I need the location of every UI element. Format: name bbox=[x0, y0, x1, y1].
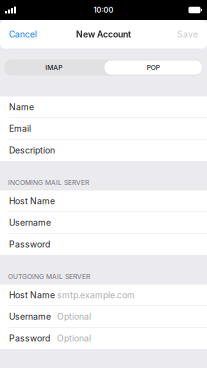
staticText: Host Name bbox=[9, 196, 55, 206]
button[interactable]: POP bbox=[103, 59, 203, 75]
staticText: Username bbox=[9, 311, 51, 322]
button[interactable]: Name bbox=[0, 96, 207, 117]
button[interactable]: Username bbox=[0, 212, 207, 233]
staticText: Password bbox=[9, 239, 50, 249]
button[interactable]: Password bbox=[0, 233, 207, 255]
staticText: IMAP bbox=[45, 63, 62, 72]
button[interactable]: Password bbox=[0, 327, 207, 349]
staticText: New Account bbox=[76, 29, 131, 39]
staticText: INCOMING MAIL SERVER bbox=[8, 178, 89, 186]
staticText: Email bbox=[9, 123, 31, 134]
button[interactable]: IMAP bbox=[4, 59, 103, 75]
button[interactable]: Host Name bbox=[0, 284, 207, 305]
staticText: Optional bbox=[57, 333, 91, 343]
button[interactable]: Save bbox=[168, 20, 207, 48]
staticText: Username bbox=[9, 217, 51, 228]
staticText: Host Name bbox=[9, 290, 55, 300]
button[interactable]: Cancel bbox=[0, 20, 46, 48]
button[interactable]: Username bbox=[0, 306, 207, 327]
staticText: Password bbox=[9, 333, 50, 343]
staticText: smtp.example.com bbox=[57, 290, 135, 300]
staticText: Cancel bbox=[9, 29, 37, 39]
button[interactable]: Description bbox=[0, 139, 207, 161]
staticText: Optional bbox=[57, 311, 91, 322]
staticText: Save bbox=[177, 29, 198, 39]
staticText: POP bbox=[147, 63, 160, 72]
button[interactable]: Email bbox=[0, 118, 207, 139]
staticText: 10:00 bbox=[93, 6, 113, 14]
staticText: Description bbox=[9, 145, 55, 155]
staticText: Name bbox=[9, 102, 34, 112]
button[interactable]: Host Name bbox=[0, 190, 207, 211]
staticText: OUTGOING MAIL SERVER bbox=[8, 272, 90, 280]
